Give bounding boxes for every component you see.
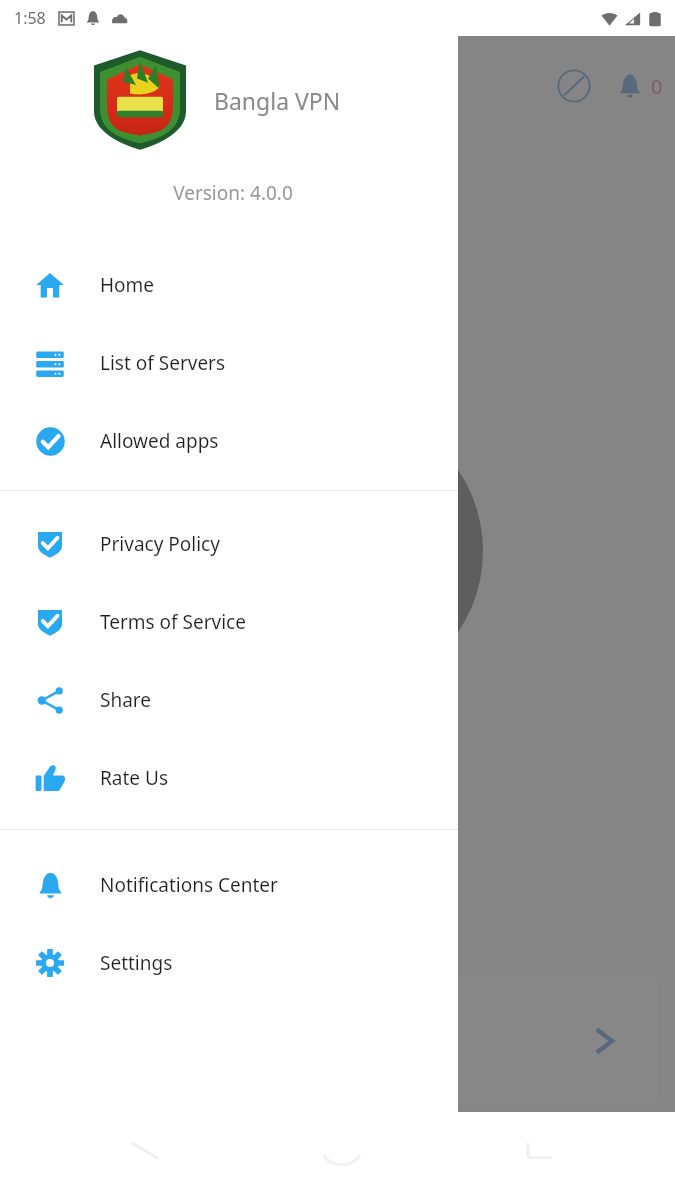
staticText: Notifications Center <box>100 872 278 898</box>
staticText: Share <box>100 687 152 713</box>
button[interactable]: Home <box>0 246 458 324</box>
staticText: 1:58 <box>14 7 46 29</box>
staticText: List of Servers <box>100 350 226 376</box>
button[interactable] <box>193 406 483 696</box>
button[interactable]: Notifications Center <box>0 846 458 924</box>
button[interactable]: Share <box>0 661 458 739</box>
button[interactable]: List of Servers <box>0 324 458 402</box>
staticText: Terms of Service <box>100 609 246 635</box>
button[interactable]: Privacy Policy <box>0 505 458 583</box>
staticText: Version: 4.0.0 <box>173 180 293 206</box>
staticText: Bangla VPN <box>214 85 341 116</box>
button[interactable]: Settings <box>0 924 458 1002</box>
button[interactable]: Remove ads <box>557 69 591 103</box>
button[interactable]: Notifications <box>617 73 643 99</box>
staticText: Settings <box>100 950 173 976</box>
staticText: Allowed apps <box>100 428 219 454</box>
staticText: Home <box>100 272 155 298</box>
button[interactable]: Allowed apps <box>0 402 458 480</box>
staticText: 0 <box>651 73 663 100</box>
staticText: Privacy Policy <box>100 531 220 557</box>
staticText: Rate Us <box>100 765 168 791</box>
button[interactable] <box>18 976 657 1106</box>
button[interactable]: Terms of Service <box>0 583 458 661</box>
button[interactable]: Rate Us <box>0 739 458 817</box>
